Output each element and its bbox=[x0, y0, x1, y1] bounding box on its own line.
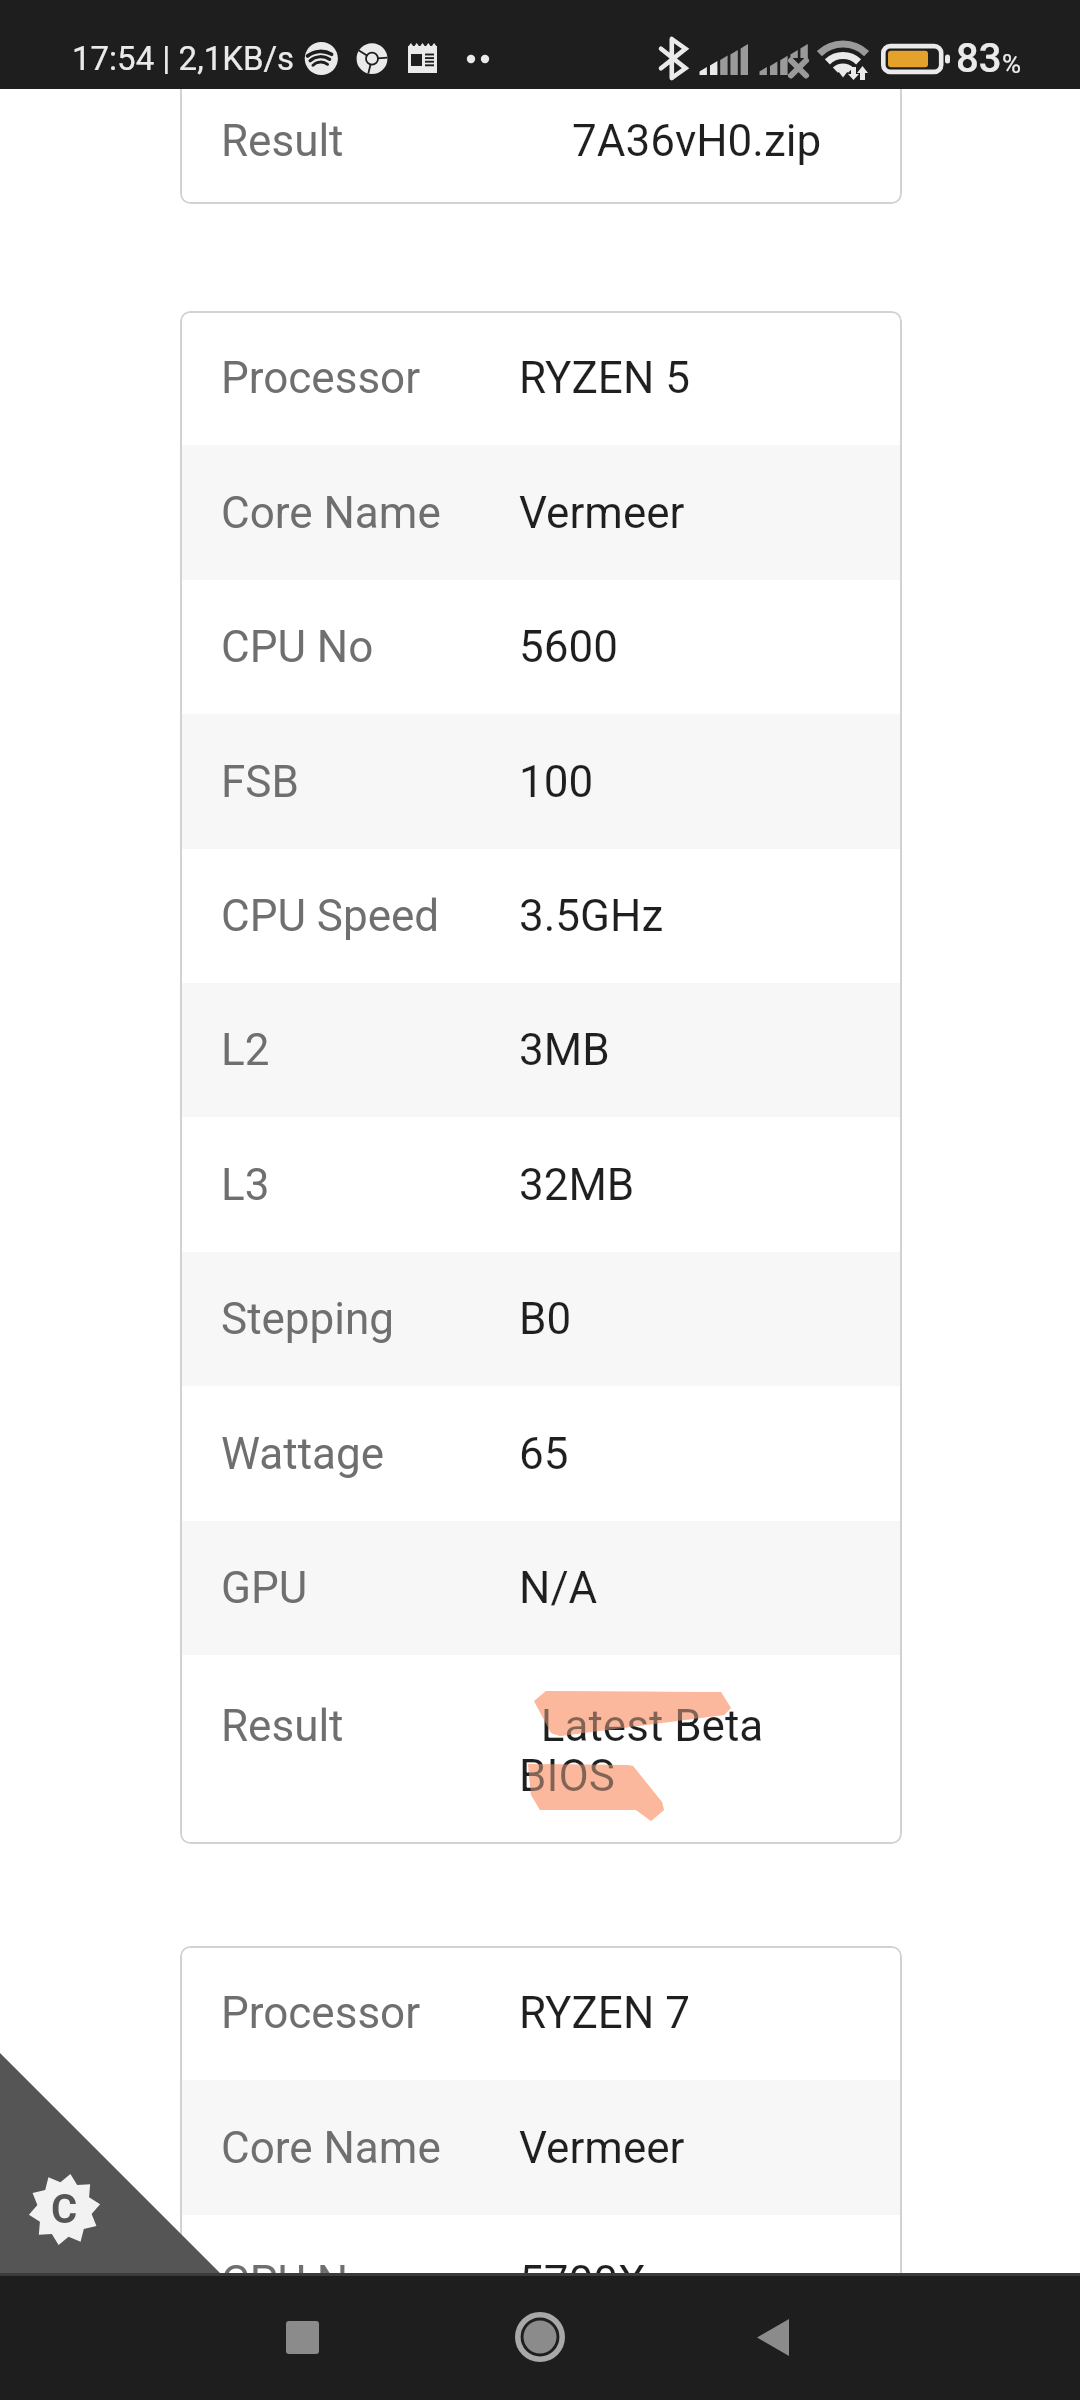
staticText: Vermeer bbox=[519, 2122, 685, 2174]
staticText: CPU Speed bbox=[221, 890, 440, 942]
button[interactable]: Result bbox=[180, 1655, 902, 1844]
button[interactable]: Processor bbox=[180, 311, 902, 445]
staticText: Stepping bbox=[221, 1293, 394, 1345]
staticText: 3MB bbox=[519, 1024, 610, 1076]
staticText: 65 bbox=[519, 1428, 569, 1480]
staticText: Processor bbox=[221, 1987, 421, 2039]
staticText: Vermeer bbox=[519, 487, 685, 539]
button[interactable]: Back bbox=[733, 2297, 813, 2377]
staticText: Core Name bbox=[221, 487, 441, 539]
staticText: Result bbox=[221, 1700, 344, 1752]
button[interactable]: GPU bbox=[180, 1521, 902, 1655]
button[interactable]: CPU No bbox=[180, 580, 902, 714]
button[interactable]: Home bbox=[495, 2292, 585, 2382]
button[interactable]: FSB bbox=[180, 714, 902, 849]
button[interactable]: Result bbox=[180, 44, 902, 204]
staticText: L2 bbox=[221, 1024, 270, 1076]
staticText: B0 bbox=[519, 1293, 572, 1345]
staticText: Latest Beta BIOS bbox=[519, 1700, 809, 1801]
staticText: 32MB bbox=[519, 1159, 635, 1211]
staticText: 5600 bbox=[519, 621, 618, 673]
button[interactable]: Core Name bbox=[180, 445, 902, 580]
staticText: RYZEN 5 bbox=[519, 352, 690, 404]
staticText: C bbox=[51, 2186, 78, 2233]
button[interactable]: Core Name bbox=[180, 2080, 902, 2215]
staticText: Processor bbox=[221, 352, 421, 404]
button[interactable]: CPU Speed bbox=[180, 849, 902, 983]
staticText: % bbox=[1002, 49, 1022, 79]
button[interactable]: Recent apps bbox=[262, 2297, 342, 2377]
button[interactable]: L2 bbox=[180, 983, 902, 1117]
button[interactable]: Processor bbox=[180, 1946, 902, 2080]
staticText: FSB bbox=[221, 756, 299, 808]
staticText: 17:54 | 2,1KB/s bbox=[72, 39, 295, 78]
staticText: L3 bbox=[221, 1159, 270, 1211]
staticText: 7A36vH0.zip bbox=[572, 115, 822, 167]
staticText: Core Name bbox=[221, 2122, 441, 2174]
staticText: 5700X bbox=[519, 2256, 646, 2308]
button[interactable]: L3 bbox=[180, 1117, 902, 1252]
staticText: 83 bbox=[956, 35, 1002, 82]
staticText: 100 bbox=[519, 756, 594, 808]
staticText: Result bbox=[221, 115, 344, 167]
staticText: Wattage bbox=[221, 1428, 385, 1480]
staticText: N/A bbox=[519, 1562, 598, 1614]
staticText: CPU No bbox=[221, 2256, 374, 2308]
staticText: RYZEN 7 bbox=[519, 1987, 690, 2039]
staticText: 3.5GHz bbox=[519, 890, 664, 942]
button[interactable]: Stepping bbox=[180, 1252, 902, 1386]
staticText: CPU No bbox=[221, 621, 374, 673]
button[interactable]: Wattage bbox=[180, 1386, 902, 1521]
staticText: GPU bbox=[221, 1562, 308, 1614]
button[interactable]: CPU No bbox=[180, 2215, 902, 2349]
